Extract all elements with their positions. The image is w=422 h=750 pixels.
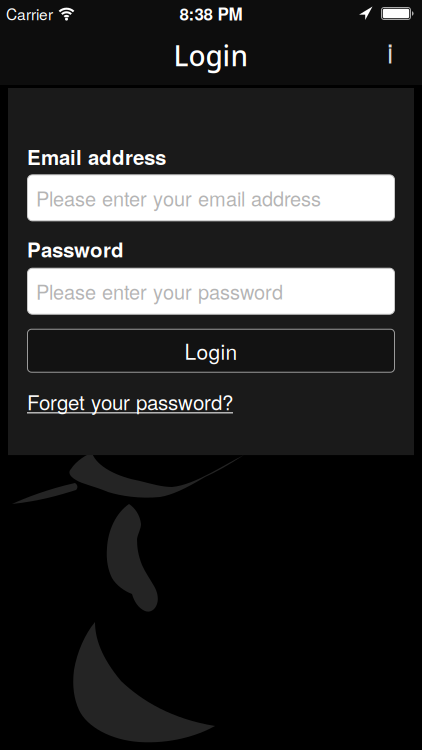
staticText: Please enter your password [36, 277, 283, 305]
staticText: i [387, 31, 393, 72]
staticText: 8:38 PM [179, 1, 242, 26]
staticText: Email address [27, 142, 166, 171]
button[interactable]: Login [27, 329, 395, 373]
button[interactable]: Forget your password? [27, 387, 233, 416]
staticText: Please enter your email address [36, 183, 321, 212]
staticText: Forget your password? [27, 387, 233, 416]
button[interactable]: Info [387, 31, 422, 81]
staticText: Password [27, 234, 124, 264]
staticText: Login [173, 36, 248, 74]
staticText: Carrier [6, 2, 53, 25]
staticText: Login [184, 336, 237, 366]
